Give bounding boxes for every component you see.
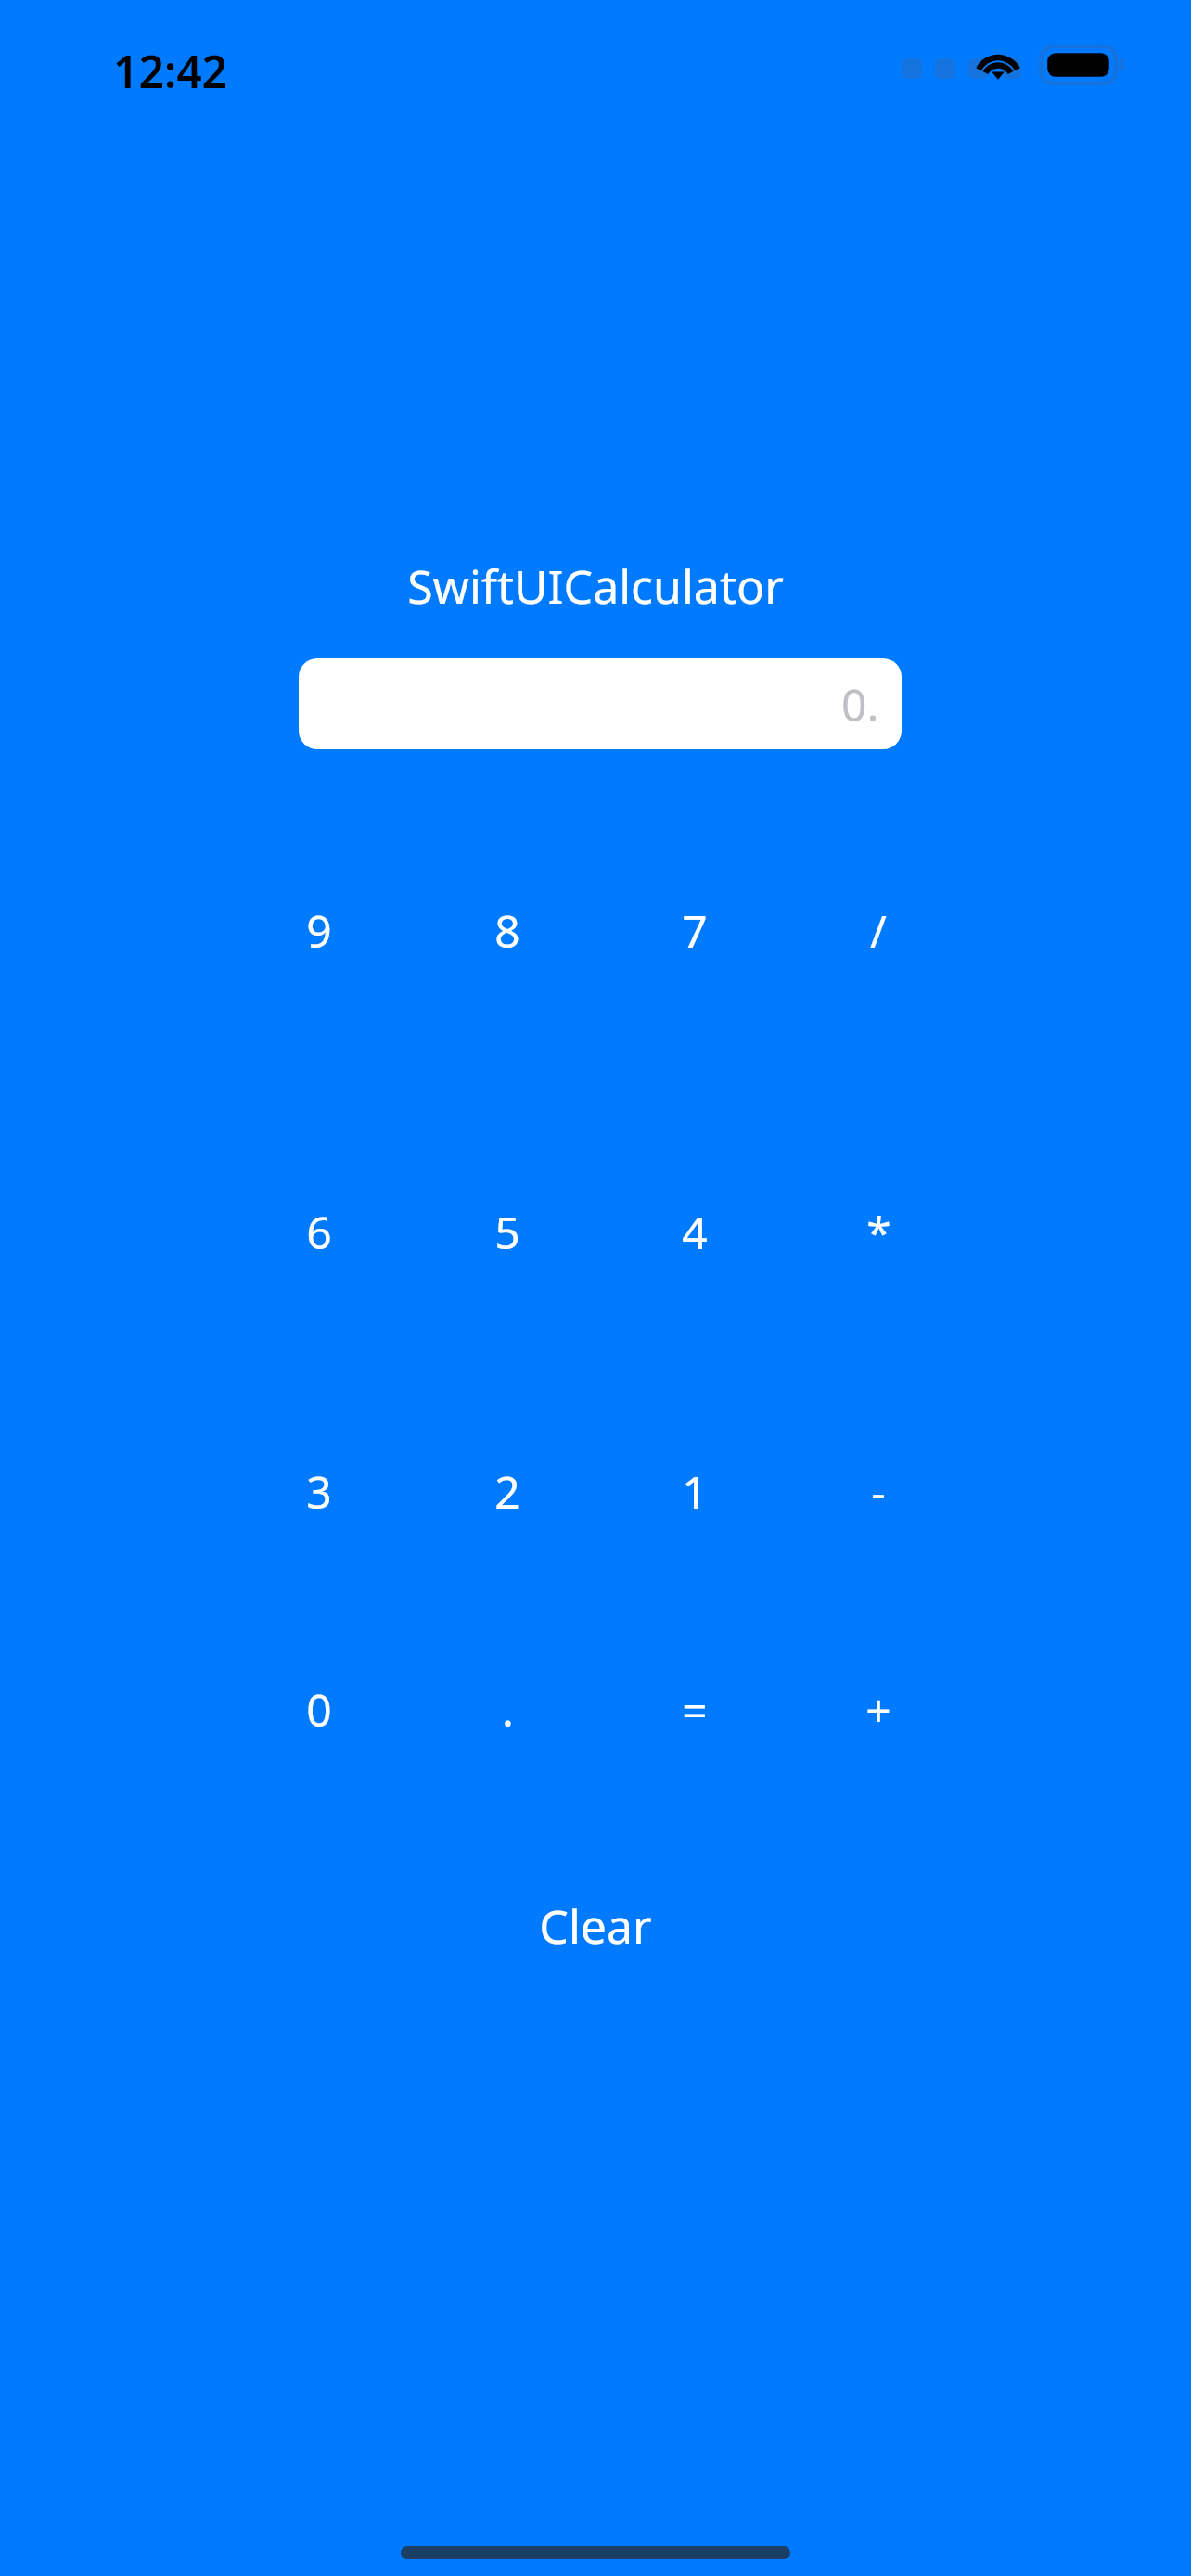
staticText: = bbox=[682, 1679, 708, 1740]
other: Battery bbox=[1041, 46, 1126, 83]
button[interactable]: 0 bbox=[231, 1653, 407, 1765]
staticText: * bbox=[866, 1202, 891, 1262]
other: Cellular signal bbox=[902, 58, 974, 79]
button[interactable]: 0. bbox=[299, 658, 902, 749]
button[interactable]: 4 bbox=[607, 1176, 783, 1287]
staticText: 1 bbox=[682, 1461, 708, 1522]
staticText: 6 bbox=[306, 1202, 332, 1262]
button[interactable]: 1 bbox=[607, 1435, 783, 1547]
button[interactable]: 5 bbox=[419, 1176, 595, 1287]
button[interactable]: 6 bbox=[231, 1176, 407, 1287]
staticText: + bbox=[865, 1679, 891, 1740]
button[interactable]: Clear bbox=[466, 1883, 725, 1969]
button[interactable]: 2 bbox=[419, 1435, 595, 1547]
button[interactable]: . bbox=[419, 1653, 595, 1765]
staticText: 8 bbox=[494, 900, 520, 961]
staticText: 4 bbox=[682, 1202, 708, 1262]
button[interactable]: 9 bbox=[231, 874, 407, 986]
staticText: / bbox=[870, 900, 887, 961]
button[interactable]: 7 bbox=[607, 874, 783, 986]
staticText: - bbox=[871, 1461, 886, 1522]
staticText: SwiftUICalculator bbox=[0, 555, 1191, 618]
staticText: Clear bbox=[539, 1894, 652, 1958]
button[interactable]: * bbox=[790, 1176, 967, 1287]
other: Wi-Fi bbox=[974, 44, 1022, 81]
staticText: 9 bbox=[306, 900, 332, 961]
button[interactable]: 8 bbox=[419, 874, 595, 986]
button[interactable]: = bbox=[607, 1653, 783, 1765]
staticText: 5 bbox=[494, 1202, 520, 1262]
button[interactable]: + bbox=[790, 1653, 967, 1765]
button[interactable]: - bbox=[790, 1435, 967, 1547]
button[interactable]: 3 bbox=[231, 1435, 407, 1547]
staticText: 0. bbox=[841, 674, 879, 734]
staticText: 0 bbox=[306, 1679, 332, 1740]
staticText: 12:42 bbox=[113, 41, 228, 101]
staticText: 2 bbox=[494, 1461, 520, 1522]
button[interactable]: / bbox=[790, 874, 967, 986]
staticText: 3 bbox=[306, 1461, 332, 1522]
staticText: . bbox=[502, 1679, 514, 1740]
staticText: 7 bbox=[682, 900, 708, 961]
